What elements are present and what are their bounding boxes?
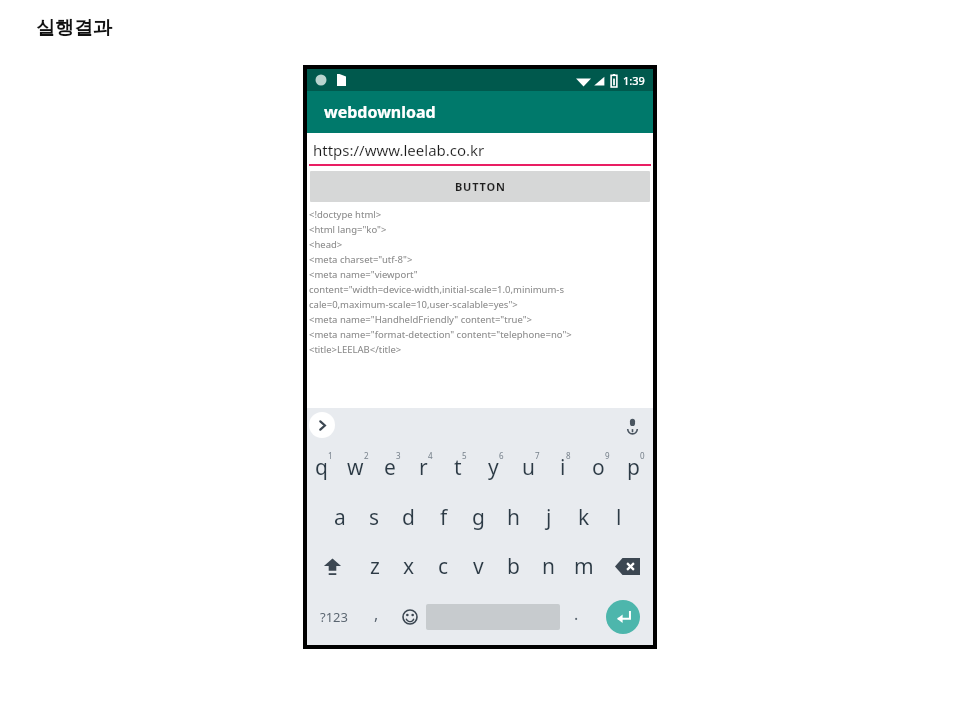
- staticText: 3: [396, 450, 401, 461]
- button[interactable]: n: [531, 542, 566, 591]
- button[interactable]: Enter: [606, 600, 640, 634]
- button[interactable]: m: [566, 542, 601, 591]
- button[interactable]: a: [323, 493, 357, 542]
- staticText: v: [473, 552, 484, 581]
- staticText: 7: [535, 450, 540, 461]
- button[interactable]: c: [426, 542, 461, 591]
- staticText: c: [438, 552, 449, 581]
- button[interactable]: Backspace: [601, 542, 653, 591]
- staticText: <html lang="ko">: [309, 223, 387, 236]
- staticText: t: [454, 453, 462, 482]
- staticText: u: [522, 453, 535, 482]
- staticText: a: [334, 503, 346, 532]
- button[interactable]: Emoji: [393, 591, 426, 643]
- button[interactable]: r: [409, 441, 443, 493]
- button[interactable]: ,: [360, 591, 393, 643]
- staticText: webdownload: [324, 101, 436, 123]
- staticText: <title>LEELAB</title>: [309, 343, 402, 356]
- staticText: x: [403, 552, 415, 581]
- button[interactable]: f: [426, 493, 461, 542]
- staticText: <head>: [309, 238, 343, 251]
- staticText: .: [574, 603, 579, 625]
- staticText: p: [627, 453, 640, 482]
- staticText: <meta charset="utf-8">: [309, 253, 413, 266]
- button[interactable]: k: [566, 493, 601, 542]
- staticText: r: [419, 453, 428, 482]
- staticText: q: [315, 453, 328, 482]
- button[interactable]: x: [392, 542, 426, 591]
- button[interactable]: b: [496, 542, 531, 591]
- button[interactable]: y: [478, 441, 513, 493]
- staticText: k: [578, 503, 590, 532]
- button[interactable]: Voice input: [619, 412, 645, 438]
- button[interactable]: q: [307, 441, 341, 493]
- button[interactable]: o: [583, 441, 618, 493]
- staticText: 실행결과: [36, 16, 112, 40]
- staticText: content="width=device-width,initial-scal…: [309, 283, 564, 296]
- staticText: f: [440, 503, 448, 532]
- staticText: e: [384, 453, 396, 482]
- staticText: z: [370, 552, 380, 581]
- staticText: n: [542, 552, 555, 581]
- staticText: d: [402, 503, 415, 532]
- staticText: m: [574, 552, 594, 581]
- button[interactable]: BUTTON: [310, 171, 650, 202]
- button[interactable]: t: [443, 441, 478, 493]
- staticText: 8: [566, 450, 571, 461]
- staticText: <!doctype html>: [309, 208, 382, 221]
- button[interactable]: j: [531, 493, 566, 542]
- staticText: 2: [364, 450, 369, 461]
- staticText: l: [616, 503, 622, 532]
- button[interactable]: https://www.leelab.co.kr: [307, 133, 653, 166]
- staticText: 0: [640, 450, 645, 461]
- staticText: s: [369, 503, 380, 532]
- button[interactable]: More suggestions: [309, 412, 335, 438]
- staticText: w: [347, 453, 364, 482]
- button[interactable]: Shift: [307, 542, 358, 591]
- staticText: <meta name="viewport": [309, 268, 418, 281]
- button[interactable]: d: [391, 493, 426, 542]
- staticText: g: [472, 503, 485, 532]
- button[interactable]: u: [513, 441, 548, 493]
- button[interactable]: i: [548, 441, 583, 493]
- button[interactable]: l: [601, 493, 636, 542]
- staticText: ?123: [320, 608, 348, 626]
- staticText: <meta name="HandheldFriendly" content="t…: [309, 313, 533, 326]
- staticText: BUTTON: [455, 179, 506, 194]
- staticText: o: [592, 453, 605, 482]
- staticText: j: [546, 503, 552, 532]
- button[interactable]: s: [357, 493, 391, 542]
- button[interactable]: e: [375, 441, 409, 493]
- staticText: 1:39: [623, 73, 645, 88]
- staticText: 6: [499, 450, 504, 461]
- staticText: 4: [428, 450, 433, 461]
- button[interactable]: v: [461, 542, 496, 591]
- staticText: cale=0,maximum-scale=10,user-scalable=ye…: [309, 298, 518, 311]
- button[interactable]: w: [341, 441, 375, 493]
- button[interactable]: .: [560, 591, 593, 643]
- staticText: h: [507, 503, 520, 532]
- staticText: <meta name="format-detection" content="t…: [309, 328, 572, 341]
- button[interactable]: p: [618, 441, 653, 493]
- staticText: 5: [462, 450, 467, 461]
- staticText: i: [560, 453, 566, 482]
- staticText: b: [507, 552, 520, 581]
- button[interactable]: h: [496, 493, 531, 542]
- staticText: 1: [328, 450, 333, 461]
- staticText: y: [488, 453, 499, 482]
- button[interactable]: ?123: [307, 591, 360, 643]
- staticText: https://www.leelab.co.kr: [313, 140, 485, 160]
- staticText: ,: [374, 603, 379, 625]
- button[interactable]: g: [461, 493, 496, 542]
- staticText: 9: [605, 450, 610, 461]
- button[interactable]: <!doctype html>: [307, 207, 653, 408]
- button[interactable]: z: [358, 542, 392, 591]
